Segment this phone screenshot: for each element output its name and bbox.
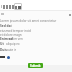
- staticText: Ut: [0, 42, 4, 46]
- staticText: eiusmod tempor incid: [0, 29, 31, 33]
- staticText: aliquip ex: [6, 42, 20, 46]
- staticText: Sed do: [0, 24, 11, 28]
- staticText: ut: [9, 24, 12, 28]
- button[interactable]: Submit: [28, 63, 43, 68]
- staticText: aute ir: [7, 48, 17, 52]
- button[interactable]: Info: [7, 56, 10, 59]
- staticText: Enim ad: [0, 37, 13, 41]
- staticText: et dolore magn: [0, 33, 22, 37]
- staticText: Lorem ipsum dolor sit amet consectetur: [0, 19, 57, 23]
- staticText: minim ven: [8, 37, 23, 41]
- button[interactable]: Menu: [14, 3, 22, 10]
- staticText: Submit: [30, 64, 41, 68]
- staticText: Duis: [0, 48, 7, 52]
